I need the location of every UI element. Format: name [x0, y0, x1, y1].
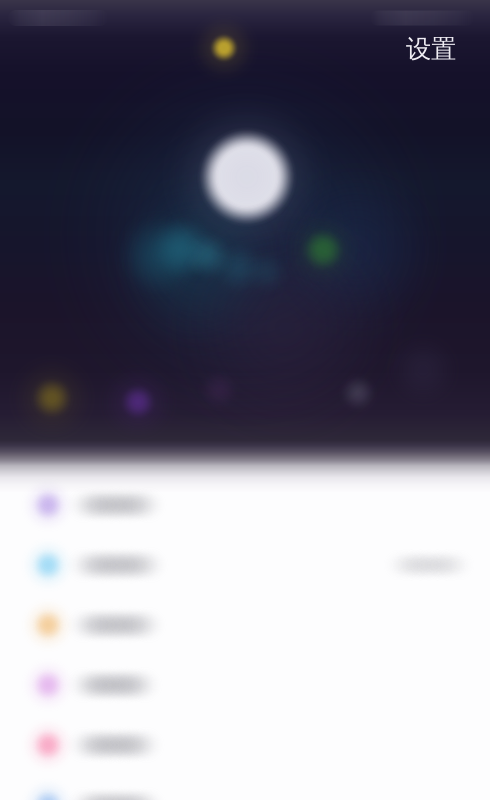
staticText: 设置: [406, 33, 456, 64]
button[interactable]: 设置: [406, 33, 490, 64]
button[interactable]: [0, 775, 490, 800]
button[interactable]: [0, 655, 490, 715]
button[interactable]: [0, 475, 490, 535]
button[interactable]: [0, 715, 490, 775]
button[interactable]: [0, 595, 490, 655]
button[interactable]: [0, 535, 490, 595]
